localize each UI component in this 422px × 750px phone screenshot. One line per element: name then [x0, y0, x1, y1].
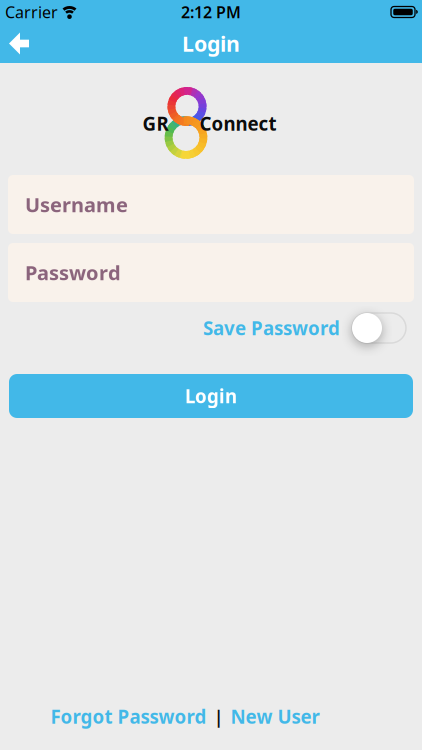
staticText: Save Password	[203, 316, 340, 340]
staticText: Login	[182, 29, 240, 58]
button[interactable]: Password	[8, 243, 414, 302]
staticText: Forgot Password	[50, 704, 206, 729]
button[interactable]: New User	[230, 704, 319, 729]
staticText: 2:12 PM	[181, 1, 241, 23]
button[interactable]: Username	[8, 175, 414, 234]
button[interactable]: Login	[9, 374, 413, 418]
staticText: |	[213, 704, 223, 729]
staticText: Carrier	[5, 1, 58, 23]
staticText: Username	[25, 191, 128, 218]
staticText: Connect	[199, 111, 276, 136]
staticText: New User	[230, 704, 319, 729]
button[interactable]: Save Password	[352, 313, 406, 343]
button[interactable]: Forgot Password	[50, 704, 206, 729]
staticText: Login	[185, 384, 237, 408]
staticText: GR	[142, 111, 168, 136]
button[interactable]: Back	[0, 24, 29, 62]
staticText: Password	[25, 259, 121, 286]
